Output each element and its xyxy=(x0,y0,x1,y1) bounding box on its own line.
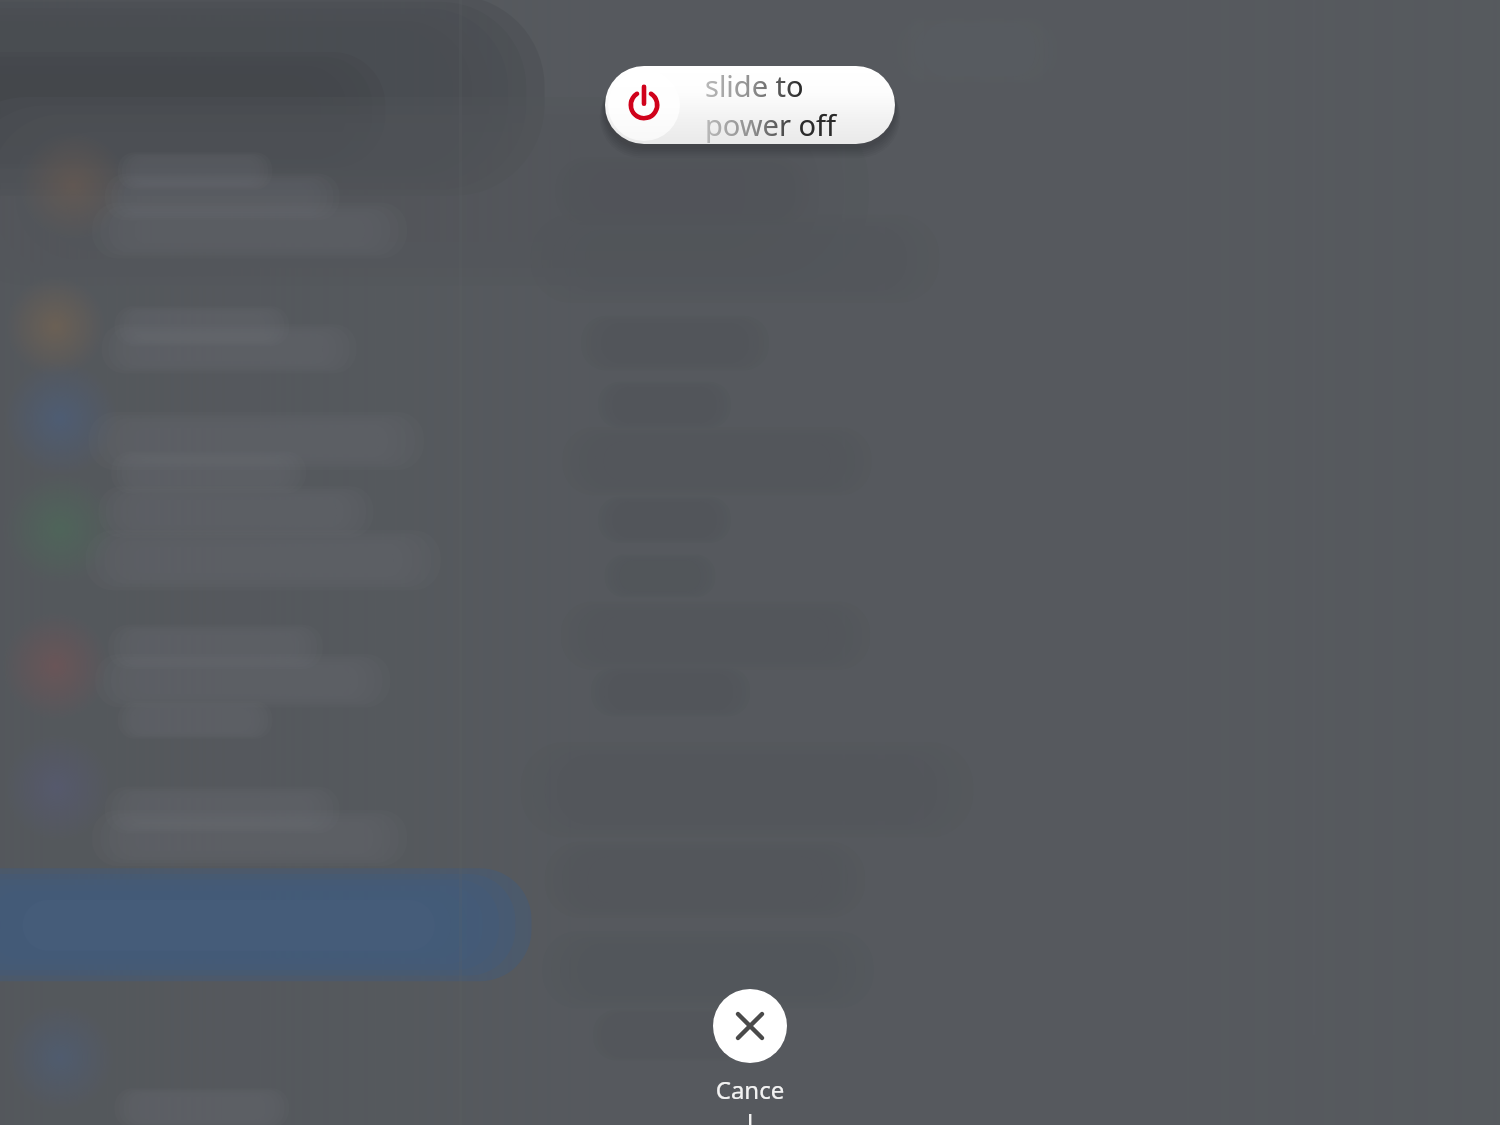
button[interactable]: Cancel xyxy=(713,989,787,1125)
staticText: Cancel xyxy=(713,1073,787,1125)
other: Power off xyxy=(608,69,680,141)
button[interactable]: Power off xyxy=(605,66,895,144)
staticText: slide to power off xyxy=(705,66,895,144)
